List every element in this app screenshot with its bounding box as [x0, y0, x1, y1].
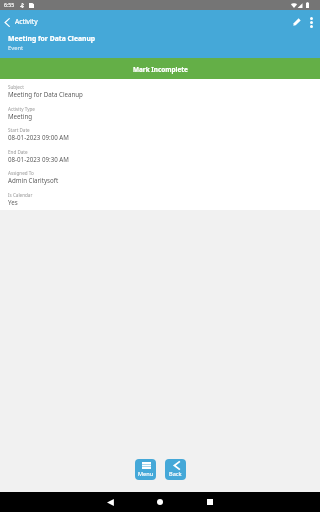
- button[interactable]: Back: [165, 459, 186, 480]
- button[interactable]: End Date: [0, 149, 320, 170]
- button[interactable]: Recents: [185, 492, 235, 512]
- button[interactable]: Home: [135, 492, 185, 512]
- button[interactable]: Activity: [0, 18, 44, 27]
- staticText: Subject: [8, 84, 24, 90]
- button[interactable]: More options: [304, 15, 318, 29]
- staticText: Event: [8, 44, 24, 52]
- staticText: Is Calendar: [8, 192, 33, 198]
- staticText: Meeting: [8, 112, 33, 120]
- staticText: 6:55: [4, 1, 15, 8]
- staticText: Mark Incomplete: [133, 65, 188, 74]
- button[interactable]: Is Calendar: [0, 192, 320, 213]
- button[interactable]: Activity Type: [0, 106, 320, 127]
- button[interactable]: Subject: [0, 84, 320, 105]
- button[interactable]: Menu: [135, 459, 156, 480]
- staticText: Menu: [138, 470, 154, 478]
- staticText: Yes: [8, 198, 18, 206]
- staticText: Meeting for Data Cleanup: [8, 34, 96, 43]
- staticText: Admin Claritysoft: [8, 176, 59, 184]
- button[interactable]: Back: [85, 492, 135, 512]
- staticText: Start Date: [8, 127, 30, 133]
- button[interactable]: Start Date: [0, 127, 320, 148]
- staticText: Activity: [15, 17, 38, 26]
- staticText: Meeting for Data Cleanup: [8, 90, 83, 98]
- button[interactable]: Assigned To: [0, 170, 320, 191]
- staticText: Activity Type: [8, 106, 35, 112]
- staticText: 08-01-2023 09:00 AM: [8, 133, 69, 141]
- staticText: Assigned To: [8, 170, 34, 176]
- staticText: 08-01-2023 09:30 AM: [8, 155, 69, 163]
- button[interactable]: Edit: [290, 15, 304, 29]
- staticText: End Date: [8, 149, 28, 155]
- button[interactable]: Mark Incomplete: [0, 58, 320, 79]
- staticText: Back: [169, 470, 182, 478]
